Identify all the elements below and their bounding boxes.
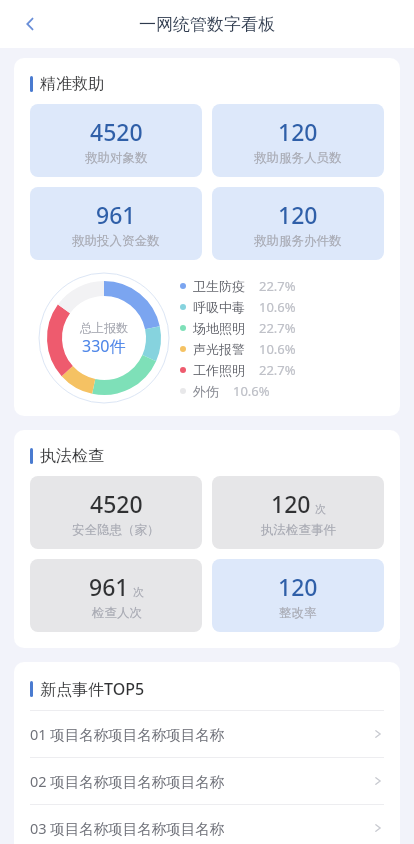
staticText: 4520: [90, 488, 143, 519]
button[interactable]: 01 项目名称项目名称项目名称: [14, 711, 400, 757]
staticText: 执法检查事件: [261, 522, 336, 538]
staticText: 声光报警: [193, 341, 245, 357]
staticText: 120: [278, 199, 318, 230]
staticText: 961: [89, 571, 129, 602]
staticText: 救助对象数: [85, 150, 148, 166]
staticText: 救助投入资金数: [72, 233, 160, 249]
staticText: 呼吸中毒: [193, 299, 245, 315]
staticText: 次: [315, 502, 326, 516]
staticText: 22.7%: [259, 361, 296, 379]
button[interactable]: 02 项目名称项目名称项目名称: [14, 758, 400, 804]
staticText: 10.6%: [233, 382, 270, 400]
staticText: 22.7%: [259, 277, 296, 295]
button[interactable]: 120: [212, 187, 384, 260]
button[interactable]: 120: [212, 559, 384, 632]
staticText: 120: [278, 116, 318, 147]
staticText: 外伤: [193, 383, 219, 399]
staticText: 安全隐患（家）: [72, 522, 160, 538]
staticText: 120: [278, 571, 318, 602]
staticText: 03 项目名称项目名称项目名称: [30, 818, 372, 838]
staticText: 精准救助: [40, 74, 104, 94]
button[interactable]: 120: [212, 104, 384, 177]
button[interactable]: 03 项目名称项目名称项目名称: [14, 805, 400, 844]
staticText: 10.6%: [259, 298, 296, 316]
button[interactable]: 120: [212, 476, 384, 549]
staticText: 961: [96, 199, 136, 230]
staticText: 执法检查: [40, 446, 104, 466]
staticText: 22.7%: [259, 319, 296, 337]
staticText: 120: [271, 488, 311, 519]
staticText: 救助服务办件数: [254, 233, 342, 249]
staticText: 01 项目名称项目名称项目名称: [30, 724, 372, 744]
staticText: 整改率: [279, 605, 317, 621]
staticText: 4520: [90, 116, 143, 147]
staticText: 次: [133, 585, 144, 599]
staticText: 一网统管数字看板: [139, 14, 275, 35]
staticText: 10.6%: [259, 340, 296, 358]
staticText: 工作照明: [193, 362, 245, 378]
staticText: 新点事件TOP5: [40, 678, 145, 700]
staticText: 总上报数: [80, 320, 128, 335]
button[interactable]: 961: [30, 187, 202, 260]
button[interactable]: Back: [10, 4, 50, 44]
button[interactable]: 4520: [30, 476, 202, 549]
staticText: 330件: [82, 335, 126, 357]
button[interactable]: 961: [30, 559, 202, 632]
staticText: 场地照明: [193, 320, 245, 336]
staticText: 卫生防疫: [193, 278, 245, 294]
staticText: 02 项目名称项目名称项目名称: [30, 771, 372, 791]
staticText: 检查人次: [92, 605, 142, 621]
button[interactable]: 4520: [30, 104, 202, 177]
staticText: 救助服务人员数: [254, 150, 342, 166]
